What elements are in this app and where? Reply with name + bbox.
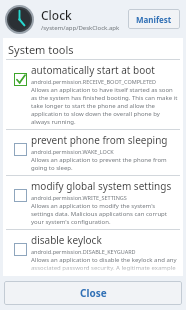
staticText: Close bbox=[80, 286, 107, 300]
button[interactable]: automatically start at boot bbox=[3, 60, 183, 129]
staticText: modify global system settings bbox=[31, 179, 172, 193]
staticText: prevent phone from sleeping bbox=[31, 133, 168, 147]
staticText: automatically start at boot bbox=[31, 63, 155, 77]
staticText: Allows an application to have itself sta… bbox=[31, 86, 178, 126]
button[interactable]: modify global system settings bbox=[3, 176, 183, 229]
staticText: Allows an application to prevent the pho… bbox=[31, 156, 178, 172]
button[interactable]: prevent phone from sleeping bbox=[3, 130, 183, 175]
button[interactable]: disable keylock bbox=[3, 230, 183, 276]
staticText: Manifest bbox=[136, 14, 172, 25]
other: Clock app icon bbox=[5, 5, 34, 34]
button[interactable]: Manifest bbox=[128, 9, 180, 29]
staticText: android.permission.WAKE_LOCK bbox=[31, 148, 114, 155]
staticText: System tools bbox=[8, 42, 74, 57]
staticText: Allows an application to disable the key… bbox=[31, 256, 178, 273]
staticText: Allows an application to modify the syst… bbox=[31, 202, 178, 226]
staticText: disable keylock bbox=[31, 233, 102, 247]
button[interactable]: Close bbox=[4, 281, 182, 305]
staticText: android.permission.WRITE_SETTINGS bbox=[31, 194, 127, 201]
staticText: Clock bbox=[41, 7, 72, 23]
staticText: android.permission.DISABLE_KEYGUARD bbox=[31, 248, 136, 255]
staticText: android.permission.RECEIVE_BOOT_COMPLETE… bbox=[31, 78, 157, 85]
staticText: /system/app/DeskClock.apk bbox=[41, 24, 120, 32]
